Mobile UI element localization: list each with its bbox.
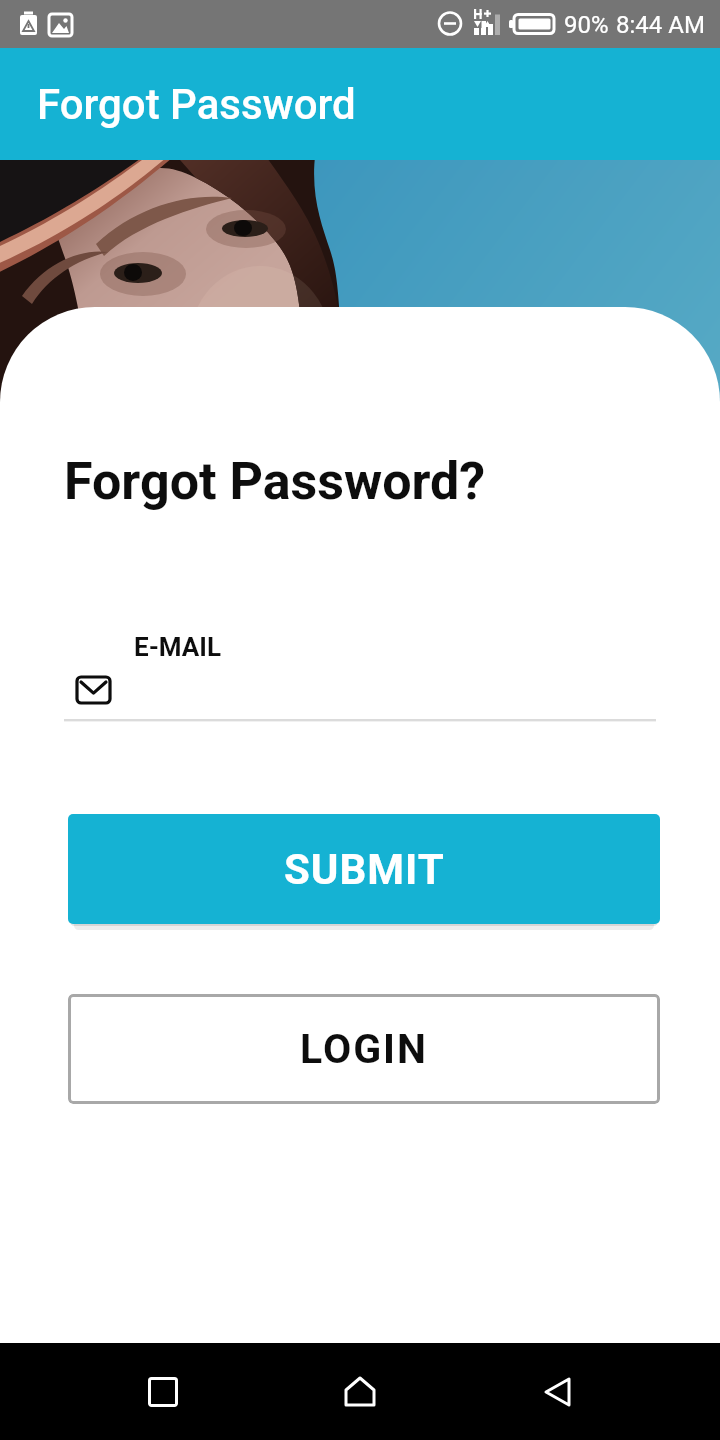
staticText: 8:44 AM	[616, 11, 705, 39]
button[interactable]: Recent apps	[128, 1357, 198, 1427]
staticText: Forgot Password?	[64, 451, 486, 512]
button[interactable]: Home	[325, 1357, 395, 1427]
button[interactable]: Back	[523, 1357, 593, 1427]
staticText: LOGIN	[300, 1025, 429, 1073]
staticText: E-MAIL	[134, 632, 222, 662]
button[interactable]: LOGIN	[68, 994, 660, 1104]
staticText: Forgot Password	[37, 80, 356, 129]
staticText: SUBMIT	[284, 845, 445, 894]
staticText: 90%	[564, 11, 609, 39]
button[interactable]: SUBMIT	[68, 814, 660, 924]
